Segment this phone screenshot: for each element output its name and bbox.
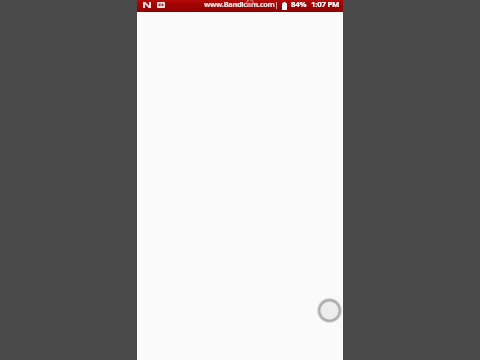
staticText: 1:07 PM <box>311 0 340 10</box>
other: Notification <box>143 2 151 8</box>
staticText: 84% <box>291 0 307 10</box>
button[interactable]: Tap indicator <box>317 298 342 323</box>
staticText: www.Bandicam.com <box>204 0 275 9</box>
other: Screen capture <box>157 2 165 8</box>
other: Battery 84 percent <box>282 2 287 10</box>
